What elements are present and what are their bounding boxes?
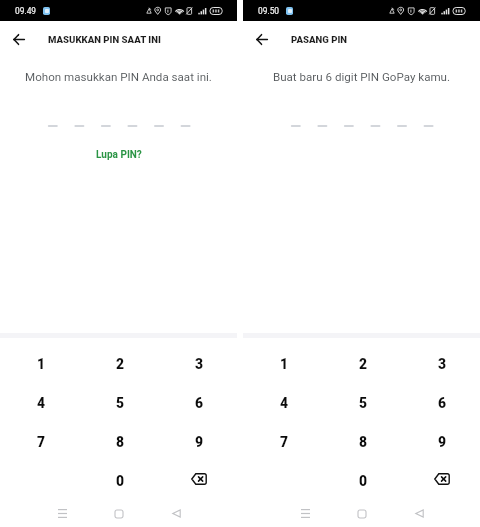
staticText: 5 (359, 395, 368, 411)
button[interactable]: 0 (79, 461, 158, 500)
staticText: PASANG PIN (291, 34, 348, 45)
button[interactable]: 3 (401, 344, 480, 383)
button[interactable]: 9 (401, 422, 480, 461)
button[interactable]: 4 (0, 383, 79, 422)
button[interactable]: 5 (322, 383, 401, 422)
staticText: 6 (195, 395, 204, 411)
other: Backspace (430, 467, 454, 491)
staticText: 8 (116, 434, 125, 450)
staticText: 9 (438, 434, 447, 450)
button[interactable]: Recent apps (289, 500, 321, 527)
button[interactable]: 5 (79, 383, 158, 422)
staticText: 1 (37, 356, 46, 372)
staticText: 1 (280, 356, 289, 372)
staticText: 2 (116, 356, 125, 372)
staticText: MASUKKAN PIN SAAT INI (48, 34, 161, 45)
button[interactable]: 1 (0, 344, 79, 383)
staticText: Lupa PIN? (96, 149, 142, 161)
button[interactable]: 3 (158, 344, 237, 383)
staticText: 3 (438, 356, 447, 372)
button[interactable]: 4 (243, 383, 322, 422)
button[interactable]: 8 (322, 422, 401, 461)
button[interactable]: 6 (158, 383, 237, 422)
staticText: 8 (359, 434, 368, 450)
button[interactable]: 2 (79, 344, 158, 383)
button[interactable]: 7 (0, 422, 79, 461)
button[interactable]: Backspace (158, 461, 237, 500)
other: Backspace (187, 467, 211, 491)
staticText: 7 (37, 434, 46, 450)
button[interactable]: Back (403, 500, 435, 527)
button[interactable]: Recent apps (46, 500, 78, 527)
staticText: 4 (280, 395, 289, 411)
button[interactable]: 0 (322, 461, 401, 500)
staticText: 7 (280, 434, 289, 450)
staticText: 3 (195, 356, 204, 372)
button[interactable]: Lupa PIN? (88, 146, 150, 164)
button[interactable]: 2 (322, 344, 401, 383)
button[interactable]: 8 (79, 422, 158, 461)
staticText: 5 (116, 395, 125, 411)
staticText: 4 (37, 395, 46, 411)
button[interactable]: Back (160, 500, 192, 527)
button[interactable]: Home (103, 500, 135, 527)
staticText: 0 (359, 473, 368, 489)
staticText: Mohon masukkan PIN Anda saat ini. (0, 70, 237, 84)
staticText: 0 (116, 473, 125, 489)
staticText: 09.49 (15, 6, 37, 16)
button[interactable]: 7 (243, 422, 322, 461)
button[interactable]: Back (250, 28, 273, 51)
staticText: Buat baru 6 digit PIN GoPay kamu. (243, 70, 480, 84)
staticText: 9 (195, 434, 204, 450)
staticText: 6 (438, 395, 447, 411)
button[interactable]: Backspace (401, 461, 480, 500)
staticText: 09.50 (258, 6, 280, 16)
button[interactable]: Back (7, 28, 30, 51)
button[interactable]: 9 (158, 422, 237, 461)
button[interactable]: 6 (401, 383, 480, 422)
button[interactable]: Home (346, 500, 378, 527)
staticText: 2 (359, 356, 368, 372)
button[interactable]: 1 (243, 344, 322, 383)
